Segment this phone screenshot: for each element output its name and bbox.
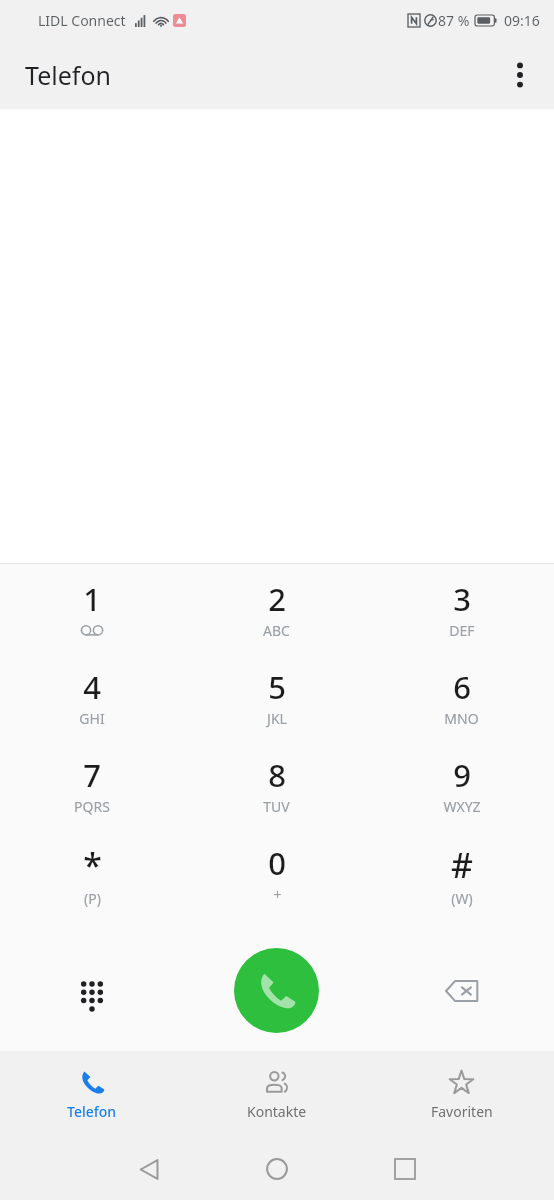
staticText: 0	[268, 842, 286, 884]
staticText: (P)	[84, 889, 101, 908]
staticText: ABC	[263, 621, 290, 640]
staticText: 09:16	[504, 11, 540, 30]
staticText: 1	[83, 578, 101, 620]
staticText: DEF	[449, 621, 475, 640]
staticText: MNO	[444, 709, 479, 728]
button[interactable]: 1	[0, 578, 184, 666]
staticText: 6	[453, 666, 471, 708]
staticText: #	[451, 842, 473, 888]
button[interactable]: Kontakte	[184, 1051, 369, 1138]
staticText: +	[273, 885, 282, 904]
button[interactable]: #	[369, 842, 554, 930]
button[interactable]: Favoriten	[369, 1051, 554, 1138]
button[interactable]: Call	[234, 948, 319, 1033]
staticText: LIDL Connect	[38, 11, 126, 30]
button[interactable]: 3	[369, 578, 554, 666]
staticText: 3	[453, 578, 471, 620]
staticText: *	[83, 842, 102, 888]
staticText: PQRS	[74, 797, 110, 816]
button[interactable]: 5	[184, 666, 369, 754]
button[interactable]: Keypad	[0, 930, 184, 1051]
button[interactable]: 8	[184, 754, 369, 842]
staticText: TUV	[263, 797, 290, 816]
button[interactable]: 9	[369, 754, 554, 842]
button[interactable]: Home	[246, 1138, 308, 1200]
staticText: Kontakte	[247, 1102, 307, 1121]
staticText: JKL	[267, 709, 287, 728]
button[interactable]: More options	[492, 47, 548, 103]
button[interactable]: Backspace	[369, 930, 554, 1051]
staticText: 9	[453, 754, 471, 796]
staticText: Telefon	[25, 58, 111, 92]
button[interactable]: Back	[118, 1138, 180, 1200]
button[interactable]: *	[0, 842, 184, 930]
staticText: 2	[268, 578, 286, 620]
staticText: Favoriten	[431, 1102, 493, 1121]
staticText: 4	[83, 666, 101, 708]
button[interactable]: 7	[0, 754, 184, 842]
staticText: WXYZ	[443, 797, 481, 816]
staticText: Telefon	[67, 1102, 117, 1121]
button[interactable]: Telefon	[0, 1051, 184, 1138]
staticText: GHI	[79, 709, 105, 728]
button[interactable]: 6	[369, 666, 554, 754]
button[interactable]: 0	[184, 842, 369, 930]
staticText: 87 %	[438, 11, 470, 30]
staticText: 7	[83, 754, 101, 796]
staticText: 5	[268, 666, 286, 708]
staticText: 8	[268, 754, 286, 796]
button[interactable]: Recents	[374, 1138, 436, 1200]
staticText: (W)	[451, 889, 473, 908]
button[interactable]: 4	[0, 666, 184, 754]
button[interactable]: 2	[184, 578, 369, 666]
